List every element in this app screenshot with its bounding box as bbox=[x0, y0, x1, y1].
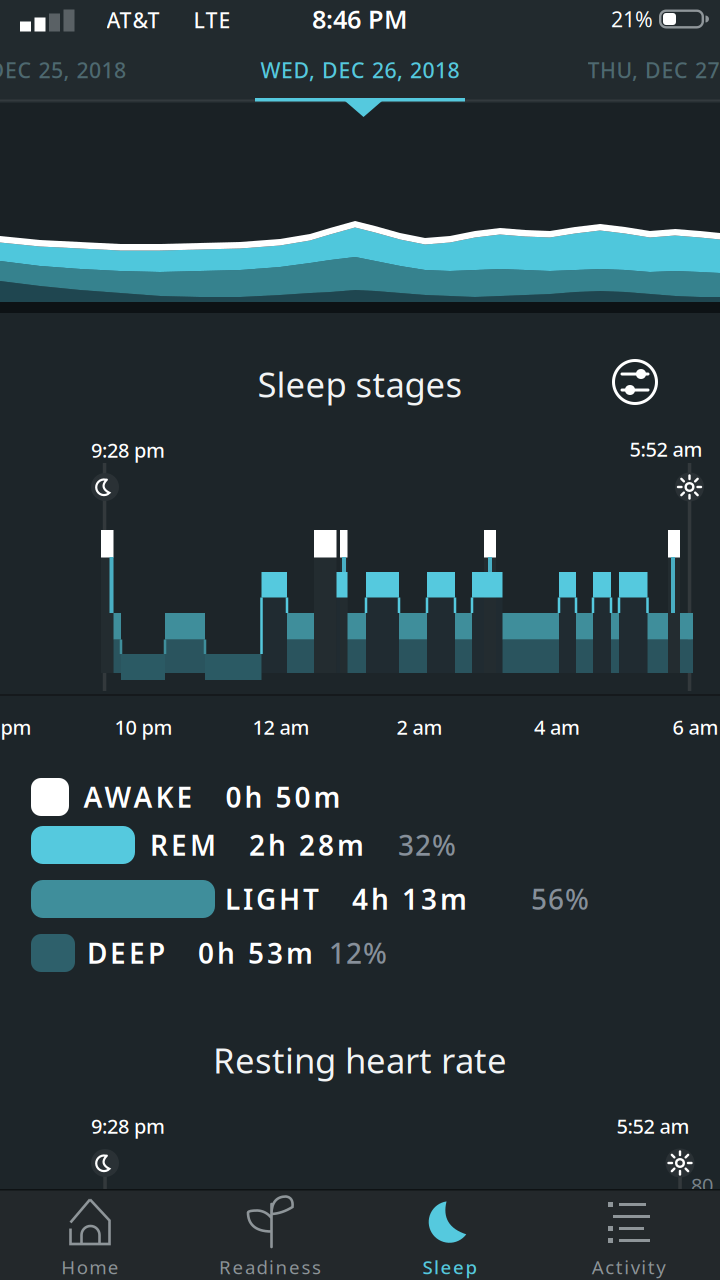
button[interactable]: Sleep bbox=[362, 1190, 538, 1280]
button[interactable]: Sleep stage options bbox=[605, 352, 665, 412]
button[interactable]: Home bbox=[2, 1190, 178, 1280]
button[interactable]: Activity bbox=[541, 1190, 717, 1280]
staticText: Home bbox=[61, 1255, 119, 1279]
staticText: REM 2h 28m bbox=[150, 826, 364, 864]
staticText: 56% bbox=[531, 880, 589, 918]
staticText: 32% bbox=[398, 826, 456, 864]
staticText: TUE, DEC 25, 2018 bbox=[0, 56, 126, 84]
button[interactable]: TUE, DEC 25, 2018 bbox=[0, 56, 126, 84]
staticText: 12% bbox=[329, 934, 387, 972]
button[interactable]: WED, DEC 26, 2018 bbox=[260, 56, 459, 84]
staticText: Sleep bbox=[422, 1255, 477, 1279]
staticText: 8:46 PM bbox=[312, 2, 408, 36]
staticText: 9:28 pm bbox=[91, 437, 165, 463]
staticText: 9 pm bbox=[0, 714, 31, 740]
staticText: WED, DEC 26, 2018 bbox=[260, 56, 459, 84]
button[interactable]: THU, DEC 27, 2018 bbox=[587, 56, 720, 84]
staticText: Resting heart rate bbox=[213, 1037, 507, 1083]
staticText: 5:52 am bbox=[629, 436, 702, 462]
staticText: 6 am bbox=[672, 714, 718, 740]
staticText: THU, DEC 27, 2018 bbox=[587, 56, 720, 84]
staticText: 21% bbox=[611, 5, 653, 33]
staticText: 10 pm bbox=[114, 714, 172, 740]
staticText: LIGHT 4h 13m bbox=[225, 880, 467, 918]
staticText: 2 am bbox=[396, 714, 442, 740]
staticText: AT&T bbox=[106, 6, 159, 34]
staticText: 12 am bbox=[252, 714, 309, 740]
staticText: 9:28 pm bbox=[91, 1113, 165, 1139]
staticText: Sleep stages bbox=[257, 361, 462, 407]
staticText: LTE bbox=[193, 6, 230, 34]
staticText: 4 am bbox=[534, 714, 580, 740]
staticText: 80 bbox=[691, 1172, 713, 1198]
staticText: DEEP 0h 53m bbox=[87, 934, 313, 972]
button[interactable]: Readiness bbox=[182, 1190, 358, 1280]
staticText: Readiness bbox=[219, 1255, 321, 1279]
staticText: 5:52 am bbox=[616, 1113, 689, 1139]
staticText: AWAKE 0h 50m bbox=[83, 778, 340, 816]
staticText: Activity bbox=[592, 1255, 666, 1279]
